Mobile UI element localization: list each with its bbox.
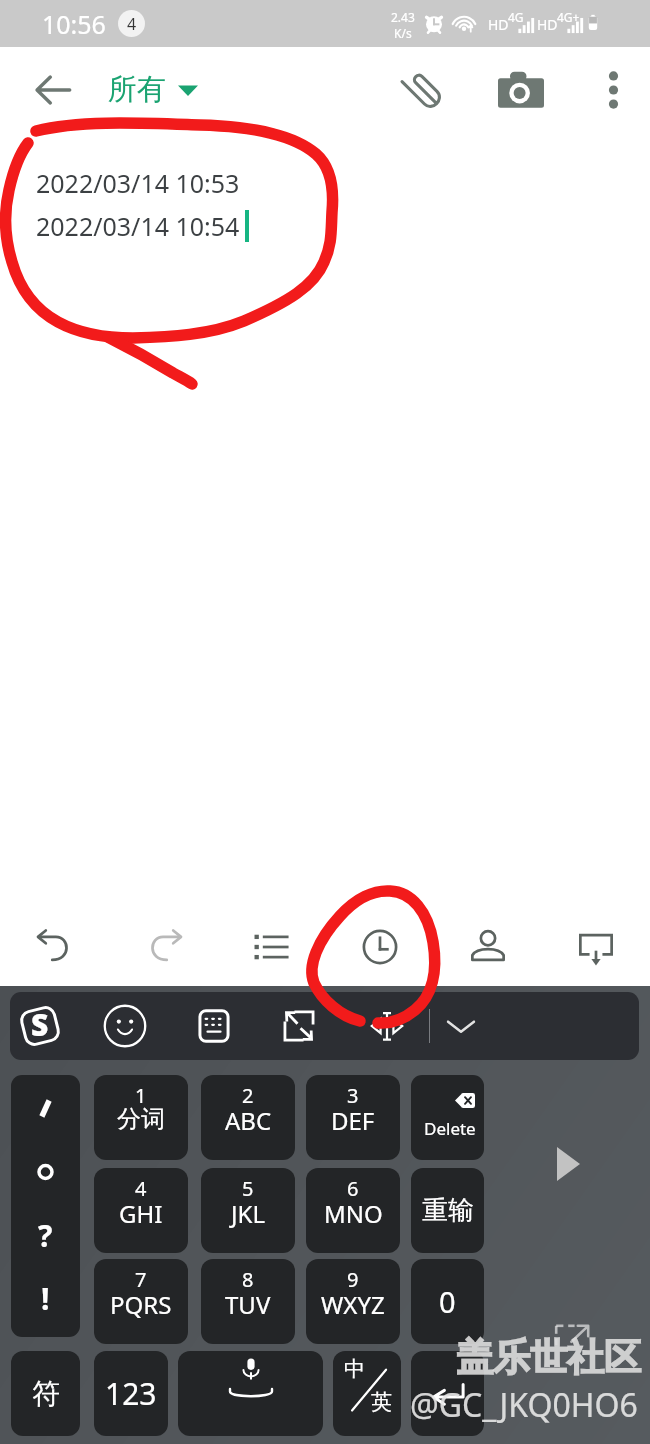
button[interactable]: Checklist (218, 908, 326, 986)
button[interactable]: 1 (94, 1075, 188, 1160)
staticText: 中 (344, 1356, 365, 1382)
staticText: S (31, 1004, 49, 1045)
staticText: 8 (242, 1266, 254, 1293)
button[interactable]: 6 (306, 1168, 400, 1253)
button[interactable]: 8 (201, 1259, 295, 1344)
button[interactable]: Sogou IME (13, 999, 67, 1053)
staticText: 123 (105, 1373, 157, 1414)
staticText: K/s (394, 25, 412, 41)
staticText: 1 (135, 1082, 147, 1109)
staticText: @GC_JKQ0HO6 (410, 1383, 638, 1427)
button[interactable]: 5 (201, 1168, 295, 1253)
staticText: 2.43 (391, 9, 415, 25)
staticText: 9 (347, 1266, 359, 1293)
button[interactable]: Redo (109, 908, 218, 986)
button[interactable]: More options (577, 54, 649, 126)
staticText: DEF (331, 1104, 375, 1137)
staticText: 分词 (117, 1104, 165, 1134)
button[interactable]: Emoji (98, 999, 152, 1053)
staticText: 4G+ (557, 9, 580, 25)
staticText: 重输 (422, 1194, 474, 1227)
staticText: GHI (119, 1197, 163, 1230)
staticText: TUV (225, 1288, 271, 1321)
button[interactable]: Contact (434, 908, 542, 986)
staticText: WXYZ (321, 1288, 385, 1321)
button[interactable]: 2 (201, 1075, 295, 1160)
staticText: 2022/03/14 10:53 (36, 166, 240, 200)
button[interactable]: Next page (540, 1136, 596, 1192)
button[interactable]: Back (22, 59, 84, 121)
button[interactable]: 7 (94, 1259, 188, 1344)
button[interactable]: Cursor control (360, 999, 414, 1053)
button[interactable]: Camera (485, 54, 557, 126)
button[interactable]: Attach file (387, 54, 459, 126)
staticText: 7 (135, 1266, 147, 1293)
button[interactable]: Resize keyboard (272, 999, 326, 1053)
button[interactable]: Keyboard layout (187, 999, 241, 1053)
staticText: 符 (32, 1376, 60, 1411)
staticText: 盖乐世社区 (456, 1334, 641, 1381)
staticText: 4 (135, 1175, 147, 1202)
staticText: 英 (371, 1389, 392, 1415)
staticText: ! (41, 1278, 50, 1319)
button[interactable]: Space and voice input (178, 1351, 323, 1436)
button[interactable]: 重输 (411, 1168, 484, 1253)
staticText: 3 (347, 1082, 359, 1109)
button[interactable]: 所有 (104, 63, 202, 116)
button[interactable]: Hide keyboard (434, 999, 488, 1053)
staticText: ? (38, 1215, 53, 1256)
staticText: MNO (324, 1197, 383, 1230)
button[interactable]: Undo (0, 908, 109, 986)
staticText: HD (488, 15, 509, 34)
button[interactable]: 9 (306, 1259, 400, 1344)
staticText: JKL (231, 1197, 265, 1230)
button[interactable]: Save (542, 908, 650, 986)
button[interactable]: Chinese English toggle (333, 1351, 401, 1436)
button[interactable]: History (326, 908, 434, 986)
staticText: Delete (424, 1117, 476, 1140)
staticText: 10:56 (42, 7, 106, 41)
button[interactable]: 4 (94, 1168, 188, 1253)
staticText: ABC (225, 1104, 272, 1137)
staticText: 2 (242, 1082, 254, 1109)
staticText: PQRS (110, 1288, 172, 1321)
button[interactable]: Punctuation (11, 1075, 80, 1337)
staticText: 4 (127, 13, 137, 35)
staticText: 0 (439, 1282, 456, 1321)
staticText: 5 (242, 1175, 254, 1202)
button[interactable]: 符 (11, 1351, 80, 1436)
staticText: 所有 (108, 71, 166, 108)
button[interactable]: Delete (411, 1075, 484, 1160)
staticText: HD (537, 15, 558, 34)
button[interactable]: 0 (411, 1259, 484, 1344)
staticText: 2022/03/14 10:54 (36, 209, 240, 243)
button[interactable]: 123 (94, 1351, 168, 1436)
button[interactable]: Enter (411, 1351, 484, 1436)
button[interactable]: 3 (306, 1075, 400, 1160)
staticText: 4G (508, 9, 524, 25)
staticText: 6 (347, 1175, 359, 1202)
